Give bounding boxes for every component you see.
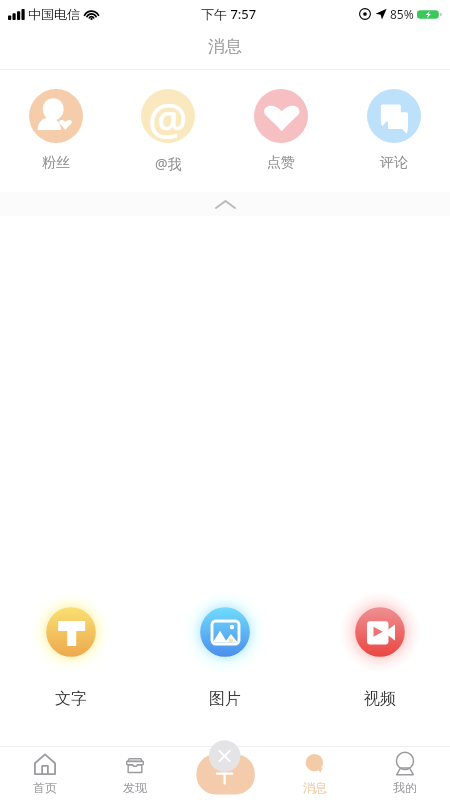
staticText: 文字 [55, 689, 87, 709]
button[interactable]: 视频 [335, 586, 425, 710]
staticText: 发现 [123, 780, 147, 795]
staticText: 中国电信 [28, 6, 80, 22]
staticText: @ [148, 89, 188, 142]
staticText: 下午 7:57 [201, 5, 257, 23]
button[interactable]: Collapse [0, 192, 450, 216]
button[interactable]: 发现 [105, 746, 165, 800]
button[interactable]: 点赞 [224, 70, 337, 192]
staticText: 点赞 [267, 154, 295, 172]
staticText: 首页 [33, 780, 57, 795]
staticText: 图片 [209, 689, 241, 709]
staticText: @我 [155, 154, 182, 173]
staticText: 评论 [380, 154, 408, 172]
button[interactable]: 图片 [180, 586, 270, 710]
button[interactable]: Close [195, 740, 255, 794]
button[interactable]: 粉丝 [0, 70, 112, 192]
staticText: 粉丝 [42, 154, 70, 172]
button[interactable]: 首页 [15, 746, 75, 800]
button[interactable]: 评论 [337, 70, 450, 192]
button[interactable]: @ [112, 70, 224, 192]
staticText: 消息 [208, 36, 242, 57]
staticText: 视频 [364, 689, 396, 709]
staticText: 我的 [393, 780, 417, 795]
button[interactable]: 文字 [26, 586, 116, 710]
button[interactable]: 消息 [285, 746, 345, 800]
button[interactable]: 我的 [375, 746, 435, 800]
staticText: 85% [390, 6, 414, 22]
staticText: 消息 [303, 780, 327, 795]
